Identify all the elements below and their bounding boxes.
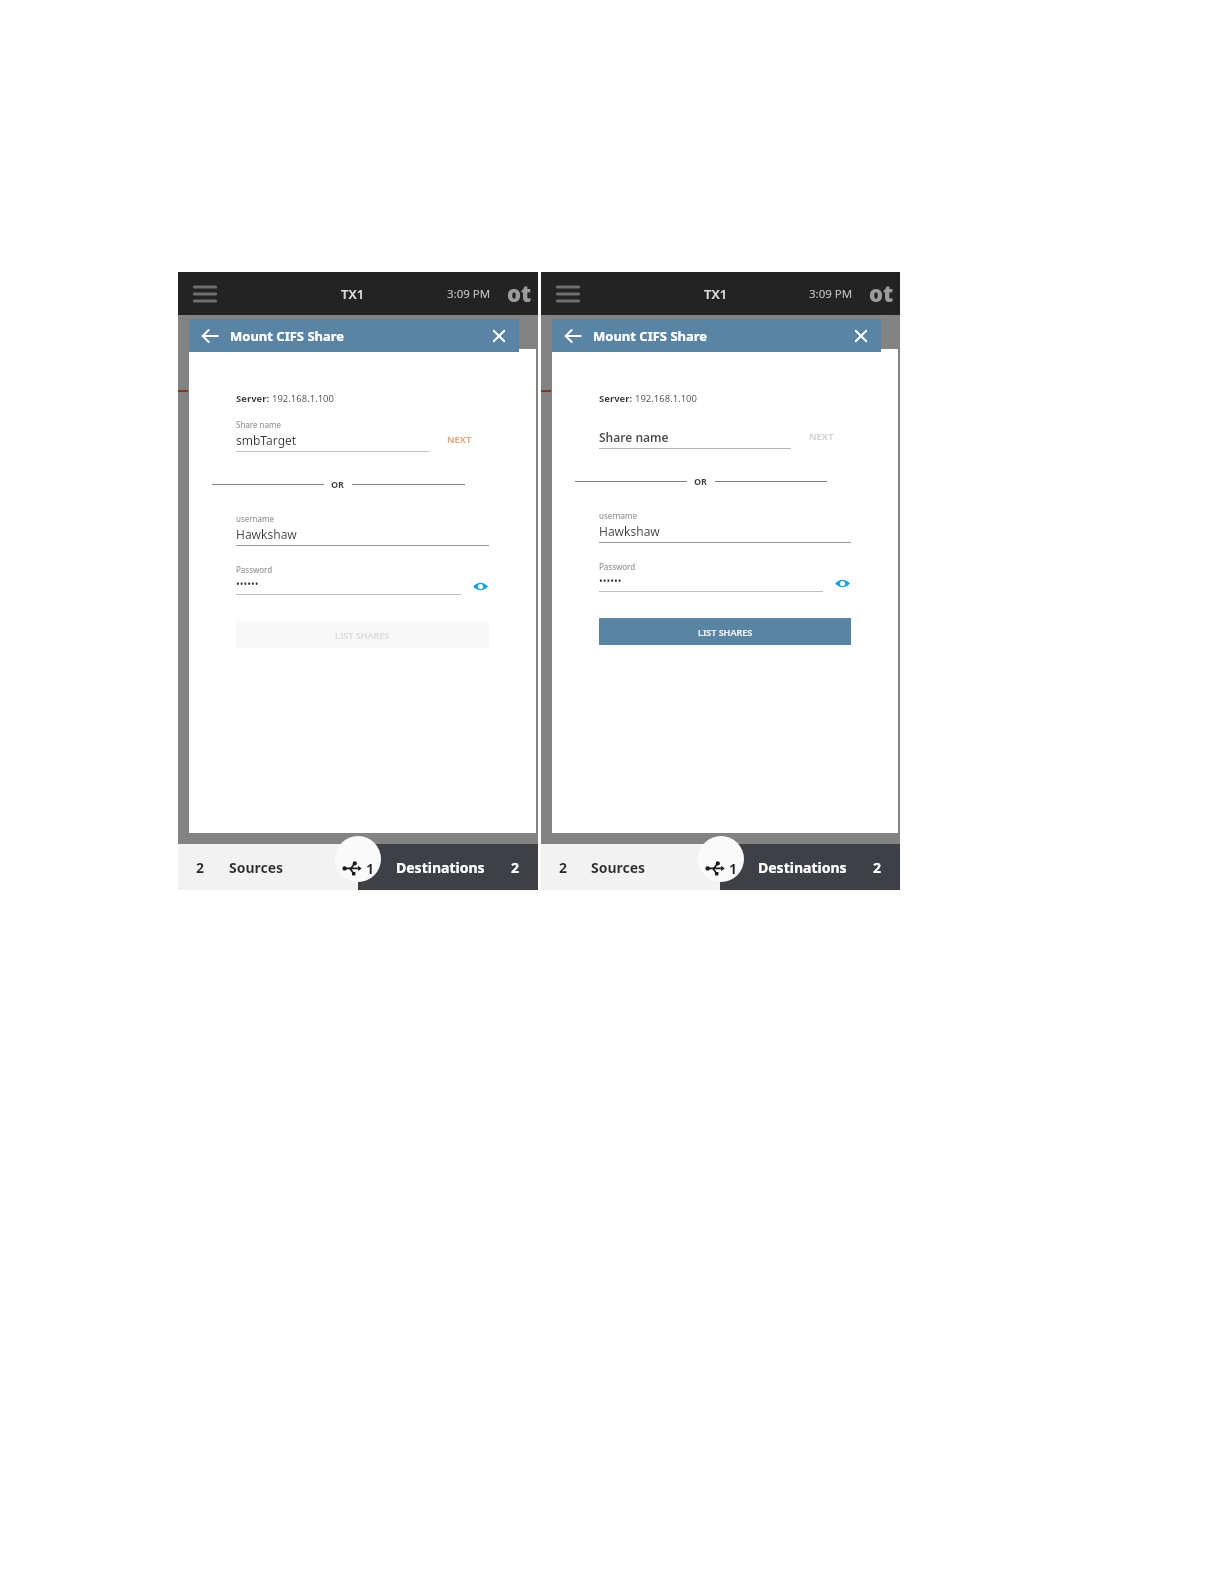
button[interactable]: USB bbox=[342, 858, 362, 878]
staticText: Sources bbox=[591, 858, 646, 877]
staticText: TX1 bbox=[341, 285, 365, 303]
button[interactable]: Menu bbox=[551, 277, 585, 311]
staticText: ot bbox=[869, 278, 894, 308]
staticText: Sources bbox=[229, 858, 284, 877]
button[interactable]: Close bbox=[487, 324, 511, 348]
button[interactable]: 2 bbox=[178, 844, 358, 890]
staticText: OR bbox=[694, 475, 708, 487]
staticText: Server: bbox=[236, 392, 272, 405]
staticText: Share name bbox=[236, 419, 281, 430]
button[interactable]: Destinations bbox=[358, 844, 538, 890]
staticText: 2 bbox=[559, 858, 568, 877]
staticText: •••••• bbox=[599, 574, 622, 588]
staticText: Destinations bbox=[396, 858, 485, 877]
button[interactable]: NEXT bbox=[791, 436, 851, 449]
staticText: Hawkshaw bbox=[236, 526, 297, 542]
staticText: 1 bbox=[366, 859, 375, 878]
staticText: 192.168.1.100 bbox=[635, 392, 697, 405]
button[interactable]: 2 bbox=[541, 844, 720, 890]
button[interactable]: Back bbox=[552, 319, 881, 352]
staticText: 3:09 PM bbox=[809, 286, 853, 302]
staticText: Mount CIFS Share bbox=[230, 327, 345, 345]
button[interactable]: Destinations bbox=[720, 844, 900, 890]
button[interactable]: Back bbox=[197, 323, 223, 349]
staticText: username bbox=[599, 510, 638, 521]
staticText: Destinations bbox=[758, 858, 847, 877]
staticText: Server: bbox=[599, 392, 635, 405]
staticText: ot bbox=[507, 278, 532, 308]
staticText: NEXT bbox=[447, 433, 472, 446]
staticText: •••••• bbox=[236, 577, 259, 591]
button[interactable]: LIST SHARES bbox=[236, 621, 489, 648]
staticText: Password bbox=[599, 561, 636, 572]
button[interactable]: Show password bbox=[471, 577, 489, 595]
staticText: 2 bbox=[873, 858, 882, 877]
staticText: Hawkshaw bbox=[599, 523, 660, 539]
staticText: 1 bbox=[729, 859, 738, 878]
staticText: 2 bbox=[196, 858, 205, 877]
staticText: NEXT bbox=[809, 430, 834, 443]
button[interactable]: LIST SHARES bbox=[599, 618, 851, 645]
button[interactable]: Close bbox=[849, 324, 873, 348]
staticText: Share name bbox=[599, 429, 669, 445]
staticText: smbTarget bbox=[236, 432, 297, 448]
staticText: 2 bbox=[511, 858, 520, 877]
button[interactable]: USB bbox=[705, 858, 725, 878]
button[interactable]: Back bbox=[560, 323, 586, 349]
staticText: OR bbox=[331, 478, 345, 490]
button[interactable]: Show password bbox=[833, 574, 851, 592]
staticText: 3:09 PM bbox=[447, 286, 491, 302]
staticText: Mount CIFS Share bbox=[593, 327, 708, 345]
staticText: LIST SHARES bbox=[335, 629, 390, 641]
button[interactable]: Back bbox=[189, 319, 519, 352]
button[interactable]: NEXT bbox=[429, 439, 489, 452]
staticText: 192.168.1.100 bbox=[272, 392, 334, 405]
staticText: Password bbox=[236, 564, 273, 575]
staticText: username bbox=[236, 513, 275, 524]
staticText: LIST SHARES bbox=[698, 626, 753, 638]
staticText: TX1 bbox=[704, 285, 728, 303]
button[interactable]: Menu bbox=[188, 277, 222, 311]
